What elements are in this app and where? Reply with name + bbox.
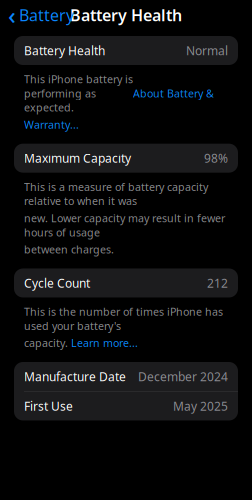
staticText: This is the number of times iPhone has u… bbox=[24, 304, 223, 333]
button[interactable]: ‹ bbox=[0, 0, 82, 35]
button[interactable]: Manufacture Date bbox=[14, 362, 238, 391]
staticText: new. Lower capacity may result in fewer … bbox=[24, 211, 225, 239]
staticText: Battery Health bbox=[24, 42, 105, 58]
staticText: Maximum Capacity bbox=[24, 150, 131, 166]
button[interactable]: Maximum Capacity bbox=[14, 144, 238, 173]
staticText: First Use bbox=[24, 398, 73, 414]
staticText: This is a measure of battery capacity re… bbox=[24, 180, 208, 208]
staticText: Battery bbox=[19, 4, 74, 26]
staticText: 212 bbox=[207, 275, 228, 291]
staticText: December 2024 bbox=[138, 368, 228, 384]
staticText: Normal bbox=[186, 42, 228, 58]
staticText: This iPhone battery is performing as exp… bbox=[24, 72, 133, 114]
staticText: Battery Health bbox=[70, 4, 182, 26]
staticText: ‹ bbox=[8, 0, 16, 31]
staticText: capacity. bbox=[24, 336, 71, 350]
staticText: Manufacture Date bbox=[24, 368, 126, 384]
staticText: Learn more... bbox=[71, 336, 138, 350]
button[interactable]: Battery Health bbox=[14, 36, 238, 65]
staticText: Cycle Count bbox=[24, 275, 90, 291]
staticText: between charges. bbox=[24, 242, 114, 256]
staticText: 98% bbox=[204, 150, 228, 166]
staticText: About Battery & bbox=[133, 86, 214, 100]
staticText: Warranty... bbox=[24, 117, 79, 132]
button[interactable]: Cycle Count bbox=[14, 268, 238, 297]
button[interactable]: First Use bbox=[14, 391, 238, 420]
staticText: May 2025 bbox=[173, 398, 228, 414]
